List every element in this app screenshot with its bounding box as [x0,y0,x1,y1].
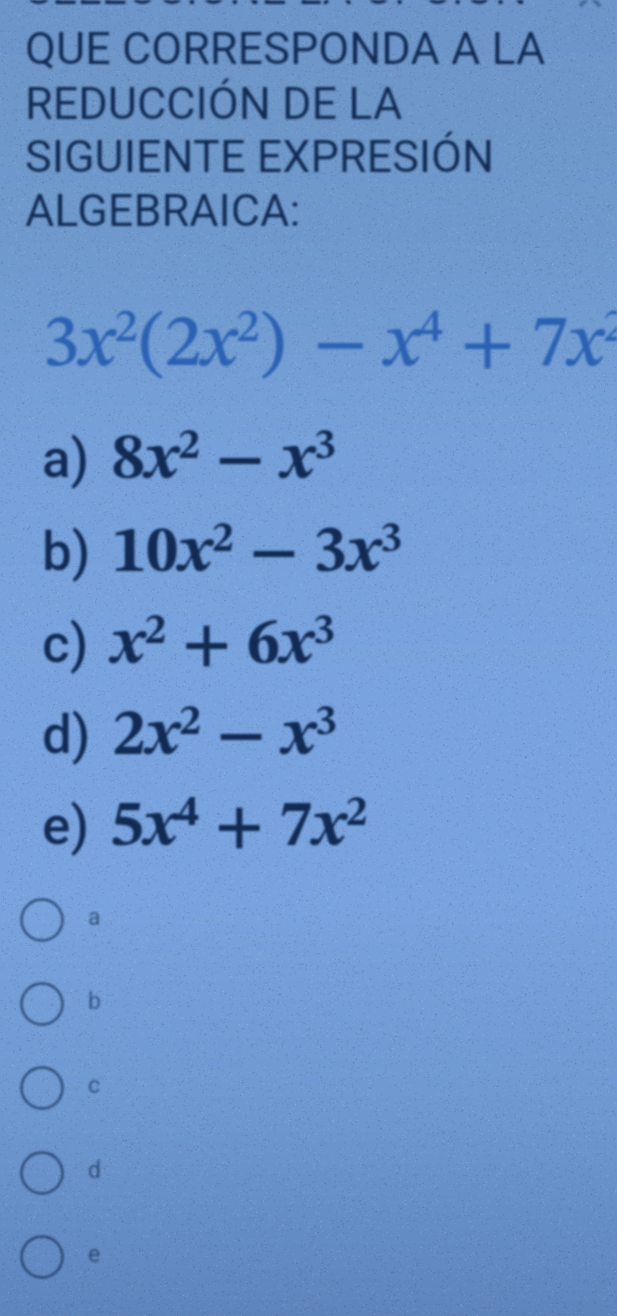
staticText: REDUCCIÓN DE LA [25,77,403,130]
button[interactable]: Close [572,0,608,14]
button[interactable]: Choose option c [20,1066,101,1110]
staticText: a [88,904,101,931]
staticText: 2x2 − x3 [113,701,338,769]
staticText: 8x2 − x3 [112,425,337,493]
button[interactable]: Choose option d [20,1151,101,1195]
staticText: b) [42,521,91,583]
staticText: c [88,1072,101,1099]
staticText: SIGUIENTE EXPRESIÓN [25,130,495,183]
staticText: e [88,1241,101,1268]
button[interactable]: c) [42,610,336,678]
staticText: e) [42,795,89,857]
staticText: c) [42,613,89,675]
staticText: d [88,1157,101,1184]
staticText: a) [42,428,90,490]
button[interactable]: Choose option a [20,898,101,942]
staticText: 10x2 − 3x3 [113,518,403,586]
staticText: 3x2(2x2) − x4 + 7x2 [43,305,617,382]
staticText: x2 + 6x3 [111,610,336,678]
button[interactable]: e) [42,792,368,860]
button[interactable]: Choose option e [20,1235,101,1279]
staticText: SELECCIONE LA OPCIÓN [25,0,527,15]
button[interactable]: Choose option b [20,982,101,1026]
staticText: d) [42,704,91,766]
staticText: b [88,988,101,1015]
staticText: QUE CORRESPONDA A LA [25,22,546,75]
staticText: 5x4 + 7x2 [111,792,368,860]
button[interactable]: b) [42,518,403,586]
staticText: ALGEBRAICA: [25,184,301,237]
button[interactable]: a) [42,425,337,493]
button[interactable]: d) [42,701,338,769]
